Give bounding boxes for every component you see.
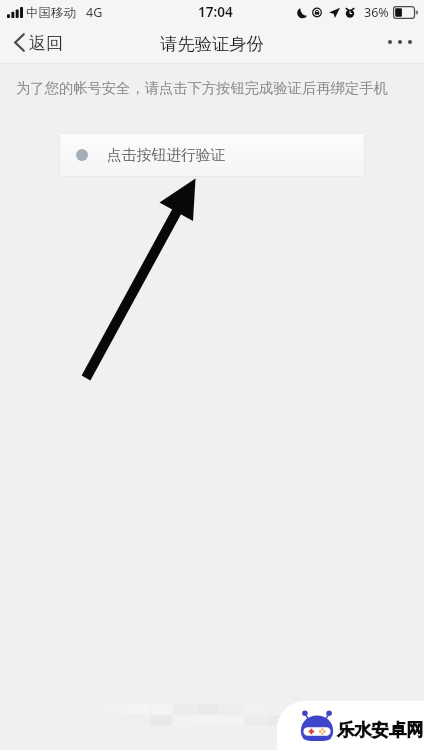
staticText: 点击按钮进行验证 [107, 146, 226, 165]
staticText: 17:04 [198, 3, 233, 21]
staticText: 为了您的帐号安全，请点击下方按钮完成验证后再绑定手机 [16, 79, 388, 97]
button[interactable]: 返回 [14, 33, 63, 54]
staticText: 36% [364, 4, 389, 21]
button[interactable]: More options [388, 40, 412, 44]
staticText: 4G [86, 4, 103, 21]
button[interactable]: 点击按钮进行验证 [59, 133, 365, 177]
staticText: 乐水安卓网 [337, 719, 424, 741]
staticText: 中国移动 [26, 5, 76, 21]
staticText: 返回 [29, 33, 63, 54]
staticText: 请先验证身份 [160, 33, 264, 55]
